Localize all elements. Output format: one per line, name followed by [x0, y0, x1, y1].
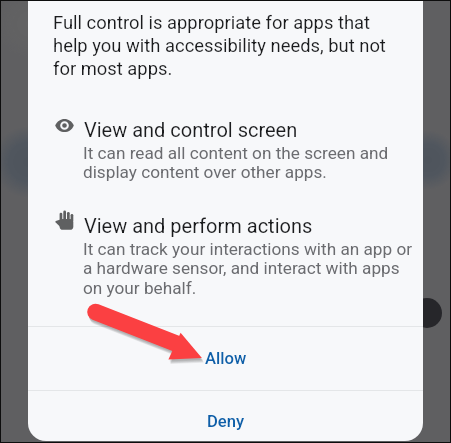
button[interactable]: Deny [28, 391, 423, 441]
button[interactable]: Allow [28, 327, 423, 390]
staticText: Full control is appropriate for apps tha… [53, 12, 401, 80]
staticText: View and control screen [84, 118, 298, 141]
staticText: Allow [205, 349, 247, 368]
staticText: It can track your interactions with an a… [83, 239, 419, 299]
staticText: It can read all content on the screen an… [83, 143, 419, 183]
other: Arrow pointing at Allow [0, 0, 451, 443]
staticText: Deny [207, 412, 245, 431]
staticText: View and perform actions [84, 214, 313, 237]
